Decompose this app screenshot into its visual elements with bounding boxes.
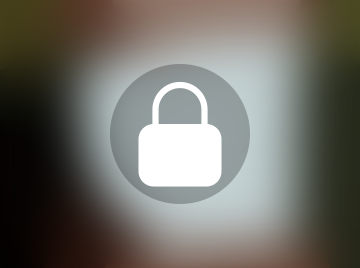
button[interactable]: Locked [110, 64, 250, 204]
